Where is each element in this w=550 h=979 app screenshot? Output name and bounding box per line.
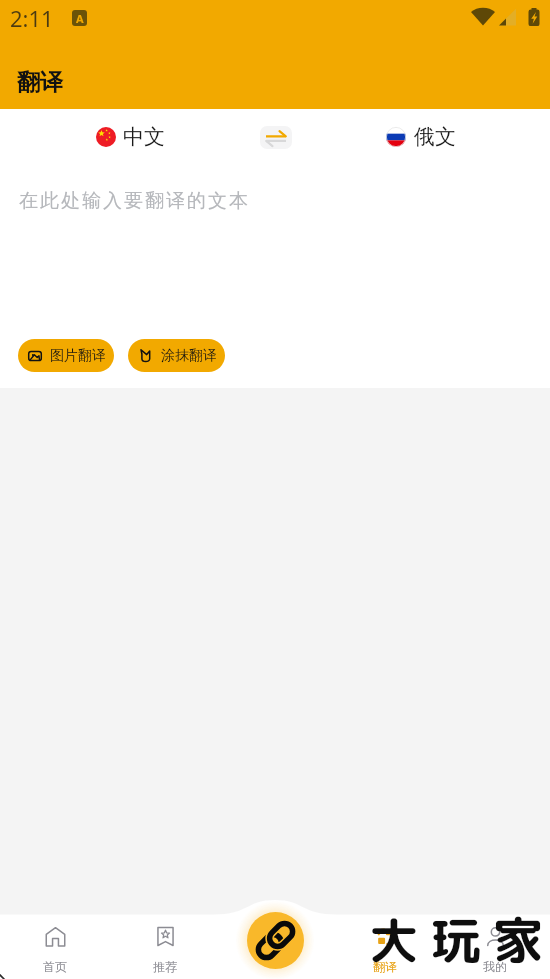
button[interactable]: 涂抹翻译 [128, 339, 225, 372]
button[interactable]: 推荐 [110, 900, 220, 979]
button[interactable]: 翻译 [330, 900, 440, 979]
staticText: 首页 [43, 959, 67, 974]
button[interactable]: Swap languages [260, 126, 292, 149]
staticText: 我的 [483, 959, 507, 974]
button[interactable]: 首页 [0, 900, 110, 979]
button[interactable]: 俄文 [291, 115, 550, 159]
button[interactable]: Link translate [247, 912, 304, 969]
staticText: 在此处输入要翻译的文本 [18, 189, 249, 213]
button[interactable]: 图片翻译 [18, 339, 114, 372]
staticText: A [76, 11, 84, 26]
staticText: 中文 [123, 124, 165, 150]
staticText: 涂抹翻译 [161, 347, 217, 365]
staticText: 翻译 [17, 68, 63, 97]
button[interactable]: 我的 [440, 900, 550, 979]
staticText: 2:11 [10, 3, 54, 33]
button[interactable]: 中文 [0, 115, 260, 159]
staticText: 推荐 [153, 959, 177, 974]
staticText: 图片翻译 [50, 347, 106, 365]
staticText: 翻译 [373, 959, 397, 974]
staticText: 俄文 [414, 124, 456, 150]
staticText: 大玩家 [369, 905, 550, 975]
